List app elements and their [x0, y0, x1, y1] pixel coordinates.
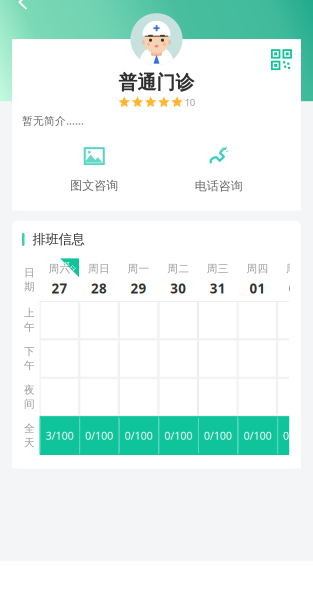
staticText: 0/100	[164, 428, 192, 443]
button[interactable]: 0/100	[238, 416, 277, 455]
staticText: 全	[24, 422, 35, 435]
staticText: 01	[249, 279, 265, 297]
staticText: 0/100	[85, 428, 113, 443]
staticText: 3/100	[45, 428, 73, 443]
staticText: 周一	[128, 262, 150, 275]
staticText: 周五	[286, 262, 308, 275]
staticText: 28	[91, 279, 107, 297]
staticText: 0/100	[283, 428, 311, 443]
staticText: 暂无简介......	[22, 113, 84, 128]
staticText: 期	[24, 280, 35, 293]
button[interactable]: 0/100	[158, 416, 198, 455]
staticText: 30	[170, 279, 186, 297]
staticText: 日	[24, 266, 35, 279]
button[interactable]: Back	[6, 0, 40, 19]
staticText: 10	[185, 96, 195, 108]
staticText: 下	[24, 345, 35, 358]
button[interactable]: 电话咨询	[156, 147, 281, 193]
staticText: 上	[24, 306, 35, 320]
staticText: 27	[51, 279, 67, 297]
staticText: 0/100	[125, 428, 153, 443]
staticText: 天	[24, 436, 35, 449]
button[interactable]: QR code	[261, 39, 301, 79]
button[interactable]: 0/100	[198, 416, 238, 455]
staticText: 31	[210, 279, 226, 297]
staticText: 普通门诊	[118, 71, 194, 94]
staticText: 周六	[48, 262, 70, 275]
staticText: 图文咨询	[70, 178, 118, 193]
staticText: 间	[24, 397, 35, 410]
staticText: 周二	[167, 262, 189, 275]
button[interactable]: 0/100	[79, 416, 119, 455]
staticText: 周四	[246, 262, 268, 275]
staticText: 0/100	[204, 428, 232, 443]
staticText: 排班信息	[32, 231, 84, 248]
button[interactable]: 0/100	[277, 416, 313, 455]
staticText: 周三	[207, 262, 229, 275]
button[interactable]: 0/100	[119, 416, 158, 455]
staticText: 今日	[63, 262, 77, 271]
button[interactable]: 3/100	[40, 416, 79, 455]
staticText: 午	[24, 321, 35, 334]
staticText: 29	[131, 279, 147, 297]
staticText: 电话咨询	[195, 179, 243, 193]
staticText: 0/100	[243, 428, 271, 443]
staticText: 02	[289, 279, 305, 297]
button[interactable]: 图文咨询	[32, 147, 156, 193]
staticText: 周日	[88, 262, 110, 275]
staticText: 夜	[24, 383, 35, 396]
staticText: 午	[24, 359, 35, 372]
